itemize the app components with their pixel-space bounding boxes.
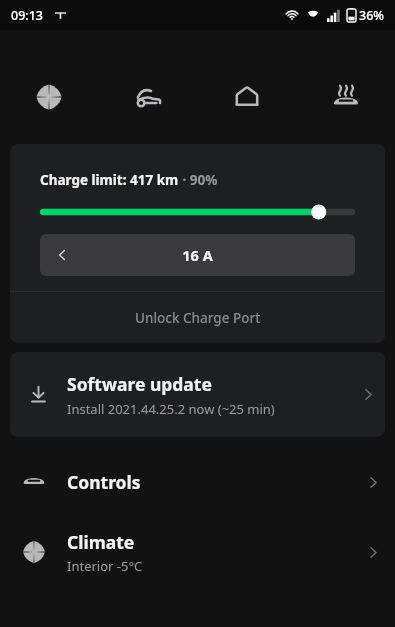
- staticText: Unlock Charge Port: [135, 309, 261, 327]
- button[interactable]: Fan: [0, 75, 98, 119]
- staticText: 16 A: [84, 245, 311, 265]
- staticText: Charge limit: 417 km: [40, 171, 179, 189]
- button[interactable]: Software update: [10, 352, 385, 437]
- button[interactable]: Unlock Charge Port: [10, 292, 385, 343]
- button[interactable]: Defrost: [296, 75, 395, 119]
- staticText: Interior -5°C: [67, 557, 143, 575]
- staticText: · 90%: [179, 171, 218, 189]
- button[interactable]: Frunk: [98, 75, 197, 119]
- button[interactable]: [40, 202, 355, 222]
- staticText: Climate: [67, 530, 135, 554]
- staticText: Software update: [67, 372, 212, 396]
- staticText: Controls: [67, 470, 141, 494]
- staticText: Install 2021.44.25.2 now (~25 min): [67, 400, 275, 418]
- button[interactable]: Decrease amps: [40, 234, 84, 276]
- staticText: 09:13: [11, 7, 44, 24]
- button[interactable]: Climate: [0, 517, 395, 587]
- button[interactable]: Decrease amps: [40, 234, 355, 276]
- staticText: 36%: [359, 7, 384, 24]
- button[interactable]: Controls: [0, 447, 395, 517]
- button[interactable]: Home: [197, 75, 296, 119]
